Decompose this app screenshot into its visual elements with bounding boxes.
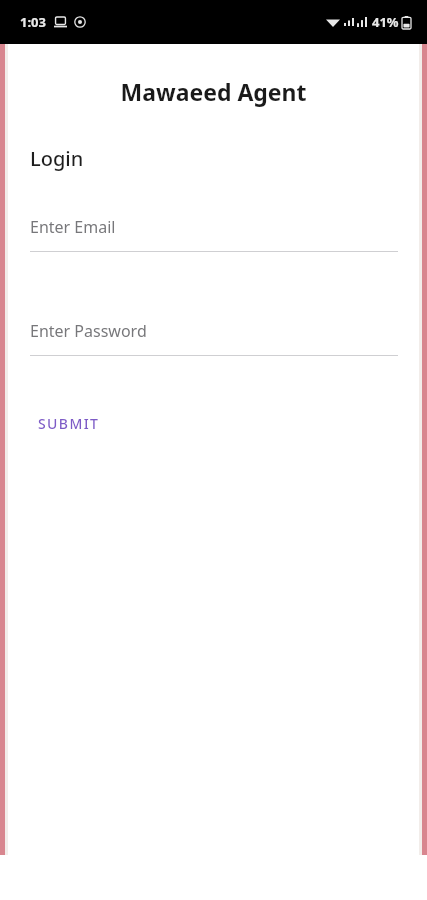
staticText: 41% <box>372 13 399 31</box>
button[interactable]: Enter Password <box>30 320 398 356</box>
staticText: 1:03 <box>20 13 46 31</box>
staticText: Enter Password <box>30 320 147 342</box>
staticText: Login <box>30 145 84 172</box>
staticText: Enter Email <box>30 216 116 238</box>
staticText: SUBMIT <box>38 414 100 433</box>
button[interactable]: SUBMIT <box>22 404 116 443</box>
button[interactable]: Enter Email <box>30 216 398 252</box>
staticText: Mawaeed Agent <box>0 76 427 107</box>
